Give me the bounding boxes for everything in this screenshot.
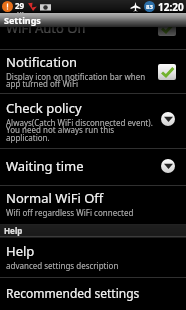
- staticText: Help: [4, 225, 23, 236]
- button[interactable]: WiFi Auto Off: [0, 27, 186, 39]
- button[interactable]: Notification: [0, 50, 186, 93]
- staticText: Notification: [6, 53, 78, 71]
- staticText: WiFi Auto Off: [6, 27, 158, 37]
- staticText: Check policy: [6, 99, 82, 117]
- staticText: advanced settings description: [6, 260, 119, 271]
- button[interactable]: Waiting time: [0, 149, 186, 185]
- button[interactable]: Check policy: [0, 94, 186, 148]
- staticText: Recommended settings: [6, 285, 140, 301]
- staticText: 29: [15, 0, 25, 11]
- staticText: Display icon on notification bar when ap…: [6, 71, 146, 90]
- staticText: Settings: [4, 14, 41, 26]
- staticText: SAT: [17, 11, 24, 13]
- staticText: 12:20: [158, 0, 184, 13]
- staticText: Normal WiFi Off: [6, 189, 104, 207]
- staticText: 83: [146, 3, 153, 11]
- staticText: Always(Catch WiFi disconnected event). Y…: [6, 117, 153, 144]
- button[interactable]: Recommended settings: [0, 278, 186, 310]
- staticText: Help: [6, 242, 35, 260]
- staticText: Wifi off regardless WiFi connected: [6, 207, 134, 218]
- button[interactable]: Help: [0, 238, 186, 277]
- button[interactable]: Normal WiFi Off: [0, 186, 186, 224]
- staticText: Waiting time: [6, 157, 84, 175]
